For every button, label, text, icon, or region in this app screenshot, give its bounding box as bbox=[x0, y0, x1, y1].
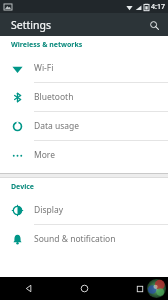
staticText: 4:17 bbox=[151, 2, 165, 12]
staticText: Device bbox=[11, 182, 35, 192]
button[interactable]: Home bbox=[56, 277, 112, 300]
staticText: Sound & notification bbox=[34, 233, 116, 245]
staticText: More bbox=[34, 149, 55, 161]
button[interactable]: Recent apps bbox=[112, 277, 168, 300]
button[interactable]: Bluetooth bbox=[0, 83, 168, 111]
staticText: Wi-Fi bbox=[34, 62, 54, 74]
button[interactable]: Back bbox=[0, 277, 56, 300]
button[interactable]: Data usage bbox=[0, 112, 168, 140]
staticText: Bluetooth bbox=[34, 91, 74, 103]
button[interactable]: Wi-Fi bbox=[0, 54, 168, 82]
staticText: Settings bbox=[11, 18, 51, 32]
staticText: Data usage bbox=[34, 120, 80, 132]
button[interactable]: Search bbox=[144, 15, 164, 35]
staticText: Wireless & networks bbox=[11, 40, 83, 50]
staticText: Display bbox=[34, 204, 63, 216]
button[interactable]: Display bbox=[0, 196, 168, 224]
button[interactable]: Sound & notification bbox=[0, 225, 168, 253]
button[interactable]: More bbox=[0, 141, 168, 169]
